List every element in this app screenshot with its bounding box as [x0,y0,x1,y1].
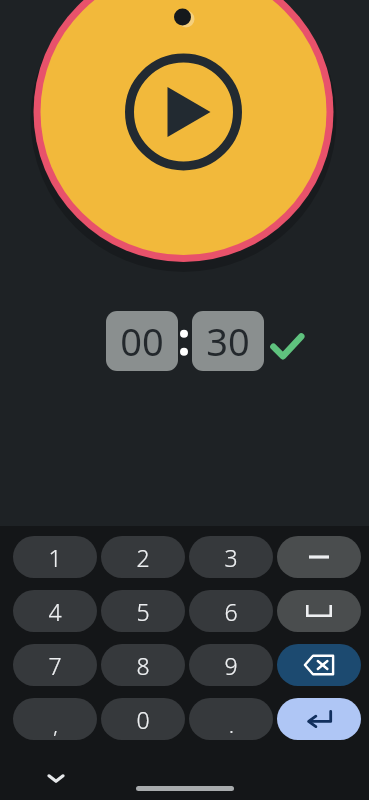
button[interactable]: 8 [101,644,185,686]
staticText: 1 [48,542,62,573]
button[interactable]: 1 [13,536,97,578]
staticText: 6 [224,596,238,627]
staticText: 0 [136,704,150,735]
button[interactable]: 0 [101,698,185,740]
staticText: 7 [48,650,62,681]
button[interactable]: 30 [192,311,264,371]
staticText: . [229,712,234,739]
button[interactable]: Hide keyboard [45,769,67,787]
staticText: 9 [224,650,238,681]
button[interactable]: 00 [106,311,178,371]
button[interactable]: , [13,698,97,740]
staticText: 2 [136,542,150,573]
button[interactable]: 2 [101,536,185,578]
button[interactable]: 9 [189,644,273,686]
staticText: 5 [136,596,150,627]
staticText: 30 [206,315,250,367]
staticText: , [53,712,58,739]
staticText: 00 [120,315,164,367]
button[interactable]: 7 [13,644,97,686]
button[interactable]: Play timer [0,0,369,290]
button[interactable]: Confirm [270,329,304,363]
button[interactable]: . [189,698,273,740]
staticText: 3 [224,542,238,573]
button[interactable]: Backspace [277,644,361,686]
button[interactable]: Space [277,590,361,632]
button[interactable]: 3 [189,536,273,578]
button[interactable]: Minus [277,536,361,578]
staticText: 4 [48,596,62,627]
button[interactable]: 4 [13,590,97,632]
button[interactable]: Enter [277,698,361,740]
button[interactable]: 6 [189,590,273,632]
staticText: 8 [136,650,150,681]
button[interactable]: 5 [101,590,185,632]
